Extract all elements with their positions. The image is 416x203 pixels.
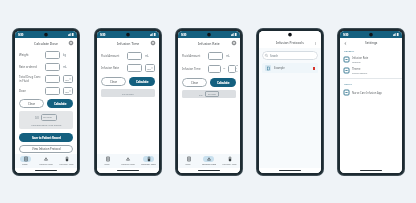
button[interactable]: Infusion Rate [117, 154, 138, 168]
staticText: 0.0 [35, 116, 39, 120]
staticText: Infusion Protocols [276, 41, 304, 45]
button[interactable]: Dose [178, 154, 198, 168]
button[interactable]: Dose [97, 154, 117, 168]
staticText: mL [63, 65, 67, 69]
staticText: System default [352, 72, 368, 75]
button[interactable]: Example [262, 63, 318, 73]
staticText: Clear [110, 80, 117, 84]
staticText: Settings [365, 41, 378, 45]
staticText: 9:30 [100, 33, 106, 37]
staticText: Fluid Amount [101, 54, 125, 58]
button[interactable] [45, 51, 60, 59]
button[interactable]: Calculate [210, 78, 236, 87]
staticText: Infusion Rate [202, 163, 216, 166]
button[interactable] [208, 52, 223, 60]
staticText: Fluid Amount [182, 54, 206, 58]
staticText: Calculate [54, 102, 67, 106]
staticText: mg [147, 67, 151, 70]
button[interactable]: Settings [150, 40, 156, 46]
button[interactable]: Calculate [129, 77, 155, 86]
staticText: 9:30 [18, 33, 24, 37]
staticText: Dose [19, 89, 43, 93]
staticText: Rate ordered [19, 65, 43, 69]
button[interactable]: Infusion Time [219, 154, 240, 168]
staticText: Infusion Time [117, 41, 140, 46]
staticText: Calculate Dose [34, 41, 58, 46]
button[interactable]: Settings [68, 40, 74, 46]
button[interactable]: Theme [340, 65, 402, 76]
button[interactable]: Clear [101, 77, 126, 86]
staticText: mL/hour [208, 93, 217, 96]
staticText: Infusion Time [222, 163, 237, 166]
staticText: Imperial [352, 61, 361, 64]
staticText: Concentration: 0.00 mg/mL [31, 123, 62, 126]
staticText: Infusion Rate [39, 163, 53, 166]
button[interactable]: Back [343, 41, 348, 46]
staticText: Dose [22, 163, 28, 166]
staticText: Infusion Time [59, 163, 74, 166]
button[interactable]: Infusion Rate [340, 54, 402, 65]
button[interactable]: Infusion Rate [35, 154, 56, 168]
staticText: Infusion Time [141, 163, 156, 166]
staticText: mg [65, 90, 69, 93]
staticText: 9:30 [343, 33, 349, 37]
staticText: Weight [19, 53, 43, 57]
button[interactable]: Settings [231, 40, 237, 46]
button[interactable]: mL/hour [41, 114, 57, 121]
button[interactable] [45, 75, 60, 83]
button[interactable] [228, 65, 236, 73]
staticText: Infusion Time [182, 67, 206, 71]
button[interactable]: Nurse Care Infusion App [340, 87, 402, 98]
staticText: Total Drug Conc in Fluid [19, 75, 43, 83]
staticText: mL/hour [43, 116, 52, 119]
button[interactable]: Calculate [47, 99, 73, 108]
button[interactable]: Clear [182, 78, 207, 87]
staticText: 9:30 [181, 33, 187, 37]
staticText: Save to Patient Record [32, 136, 61, 140]
button[interactable] [45, 87, 60, 95]
staticText: Theme [352, 67, 361, 71]
staticText: Infusion Rate [101, 66, 125, 70]
button[interactable]: Infusion Rate [198, 154, 219, 168]
staticText: 0.0 [199, 93, 203, 96]
button[interactable] [45, 63, 60, 71]
staticText: 0.0 hr/min [122, 92, 134, 95]
staticText: Calculate [136, 80, 149, 84]
button[interactable] [127, 52, 142, 60]
staticText: Infusion Rate [198, 41, 220, 46]
staticText: Infusion Rate [121, 163, 135, 166]
button[interactable]: More options [313, 41, 318, 46]
staticText: Search [270, 54, 279, 58]
staticText: View Infusion Protocol [32, 147, 61, 151]
staticText: Nurse Care Infusion App [352, 91, 382, 95]
button[interactable]: mg [145, 64, 155, 72]
button[interactable]: View Infusion Protocol [19, 145, 73, 153]
button[interactable]: Save to Patient Record [19, 133, 73, 142]
button[interactable]: Clear [19, 99, 44, 108]
button[interactable]: mg [63, 87, 73, 95]
staticText: kg [63, 53, 66, 57]
staticText: Dose [185, 163, 191, 166]
button[interactable] [127, 64, 142, 72]
staticText: hr [223, 67, 226, 70]
staticText: Clear [191, 81, 198, 85]
staticText: Example [274, 66, 285, 70]
button[interactable]: mg [63, 75, 73, 83]
button[interactable] [208, 65, 221, 73]
staticText: Clear [28, 102, 35, 106]
staticText: Dose [104, 163, 110, 166]
button[interactable]: Dose [15, 154, 35, 168]
staticText: Calculate [217, 81, 230, 85]
button[interactable]: Search [262, 51, 318, 60]
button[interactable]: Infusion Time [56, 154, 77, 168]
button[interactable]: Infusion Time [138, 154, 159, 168]
staticText: mg [65, 78, 69, 81]
staticText: ABOUT [344, 83, 352, 86]
staticText: GENERAL [344, 50, 355, 53]
staticText: mL [145, 54, 149, 58]
staticText: Infusion Rate [352, 56, 369, 60]
staticText: mL [226, 54, 230, 58]
